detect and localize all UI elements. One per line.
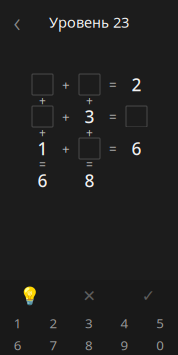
staticText: +	[86, 92, 93, 108]
button[interactable]: Back	[0, 8, 34, 36]
staticText: 8	[84, 169, 94, 192]
button[interactable]: 6	[0, 335, 36, 355]
button[interactable]: 9	[107, 335, 142, 355]
button[interactable]: 3	[71, 313, 107, 333]
staticText: 9	[121, 336, 129, 354]
staticText: 💡	[19, 286, 41, 306]
staticText: 0	[156, 336, 164, 354]
button[interactable]: 1	[0, 313, 36, 333]
button[interactable]: Hint	[0, 283, 59, 309]
staticText: +	[62, 76, 70, 93]
staticText: +	[86, 124, 93, 140]
staticText: =	[39, 156, 46, 172]
staticText: =	[109, 140, 117, 157]
staticText: 6	[131, 137, 141, 160]
button[interactable]: Clear	[59, 283, 119, 309]
staticText: +	[62, 140, 70, 157]
button[interactable]: 8	[71, 335, 107, 355]
staticText: ‹	[13, 4, 20, 40]
button[interactable]: Check	[119, 283, 178, 309]
button[interactable]: 5	[142, 313, 178, 333]
staticText: =	[109, 76, 117, 93]
staticText: 4	[121, 314, 129, 332]
staticText: 6	[37, 169, 47, 192]
staticText: 5	[156, 314, 164, 332]
staticText: 1	[14, 314, 22, 332]
staticText: 2	[131, 73, 141, 96]
staticText: 6	[14, 336, 22, 354]
button[interactable]: 0	[142, 335, 178, 355]
staticText: +	[39, 124, 46, 140]
staticText: 3	[85, 314, 93, 332]
staticText: Уровень 23	[49, 12, 129, 32]
staticText: 7	[49, 336, 57, 354]
staticText: 8	[85, 336, 93, 354]
staticText: ✕	[82, 287, 95, 305]
button[interactable]: 7	[36, 335, 71, 355]
staticText: 1	[37, 137, 47, 160]
staticText: ✓	[142, 287, 155, 305]
staticText: 3	[84, 105, 94, 128]
staticText: +	[62, 108, 70, 125]
staticText: 2	[49, 314, 57, 332]
button[interactable]: 4	[107, 313, 142, 333]
button[interactable]: 2	[36, 313, 71, 333]
staticText: =	[109, 108, 117, 125]
staticText: =	[86, 156, 93, 172]
staticText: +	[39, 92, 46, 108]
